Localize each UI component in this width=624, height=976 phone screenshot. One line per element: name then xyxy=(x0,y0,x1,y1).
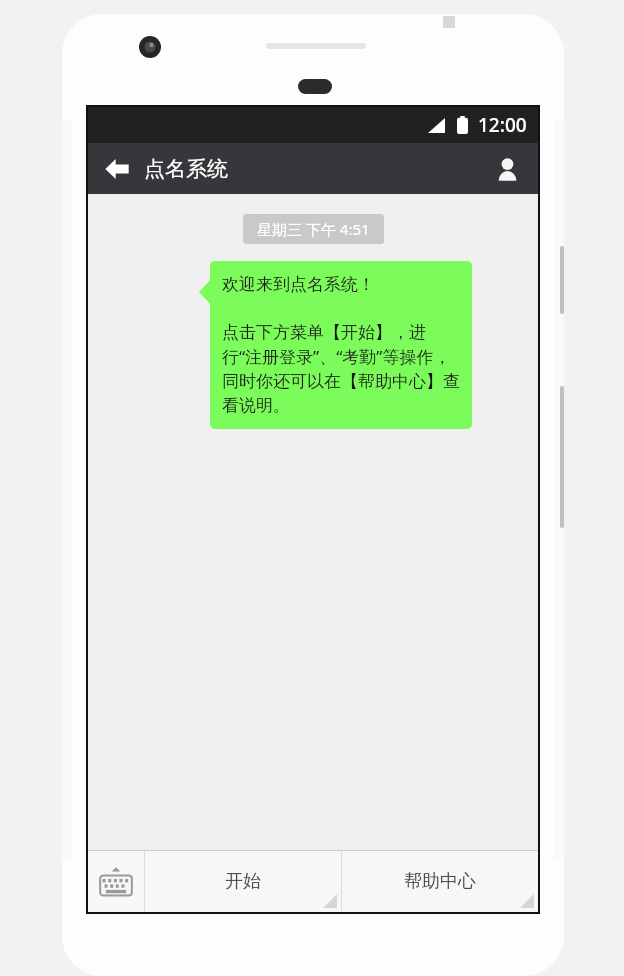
staticText: 帮助中心 xyxy=(404,870,476,893)
staticText: 星期三 下午 4:51 xyxy=(257,219,370,239)
button[interactable]: Back xyxy=(94,146,140,192)
button[interactable]: Account xyxy=(484,146,530,192)
staticText: 欢迎来到点名系统！ 点击下方菜单【开始】，进行“注册登录”、“考勤”等操作，同时… xyxy=(222,274,462,416)
button[interactable]: Keyboard xyxy=(88,851,144,912)
staticText: 点名系统 xyxy=(144,156,228,182)
button[interactable]: 开始 xyxy=(145,851,341,912)
staticText: 开始 xyxy=(225,870,261,893)
staticText: 12:00 xyxy=(478,112,527,138)
button[interactable]: 欢迎来到点名系统！ 点击下方菜单【开始】，进行“注册登录”、“考勤”等操作，同时… xyxy=(210,261,472,429)
button[interactable]: 帮助中心 xyxy=(342,851,538,912)
